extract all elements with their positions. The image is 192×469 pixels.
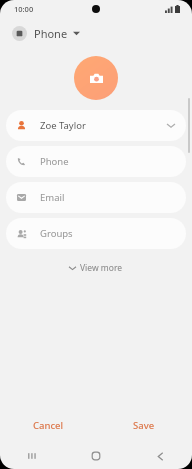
button[interactable]: Email xyxy=(6,182,186,213)
staticText: Phone xyxy=(40,155,69,168)
staticText: Save xyxy=(133,419,155,432)
button[interactable]: Zoe Taylor xyxy=(6,110,186,141)
staticText: Phone xyxy=(34,26,68,41)
button[interactable]: Cancel xyxy=(0,415,96,435)
staticText: Zoe Taylor xyxy=(40,119,167,132)
button[interactable]: Change photo xyxy=(74,56,118,100)
button[interactable]: Back xyxy=(128,443,192,469)
staticText: View more xyxy=(80,262,123,274)
button[interactable]: Phone xyxy=(6,146,186,177)
button[interactable]: Groups xyxy=(6,218,186,249)
staticText: Email xyxy=(40,191,65,204)
button[interactable]: Phone xyxy=(0,18,192,48)
staticText: 10:00 xyxy=(14,4,34,14)
button[interactable]: Recent apps xyxy=(0,443,64,469)
button[interactable]: View more xyxy=(61,259,131,277)
button[interactable]: Save xyxy=(96,415,192,435)
staticText: Groups xyxy=(40,227,73,240)
staticText: Cancel xyxy=(33,419,64,432)
button[interactable]: Home xyxy=(64,443,128,469)
